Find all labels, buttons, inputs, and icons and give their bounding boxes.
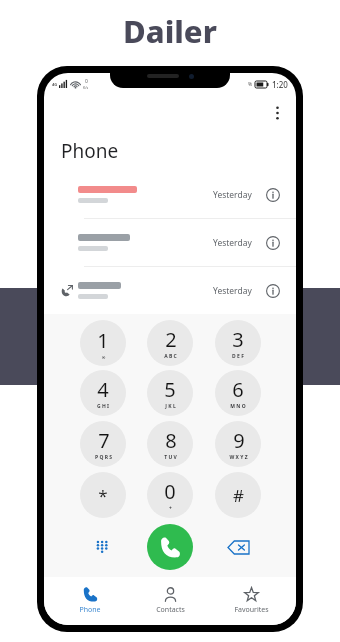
button[interactable]: 1 [80,320,126,366]
staticText: Yesterday [213,285,252,297]
button[interactable]: Keypad [83,527,123,567]
staticText: D E F [232,353,244,360]
button[interactable]: 2 [147,320,193,366]
staticText: A B C [164,353,177,360]
staticText: 4 [97,376,109,403]
staticText: J K L [165,403,176,410]
staticText: Yesterday [213,189,252,201]
button[interactable]: Call [147,524,193,570]
button[interactable]: 7 [80,421,126,467]
staticText: % [248,81,253,88]
button[interactable]: More options [264,100,290,126]
staticText: 1 [97,327,109,354]
staticText: G H I [97,403,109,410]
staticText: 6 [232,376,244,403]
staticText: Contacts [156,605,185,615]
staticText: K/s [83,85,89,90]
button[interactable]: Favourites [216,583,286,619]
staticText: M N O [230,403,246,410]
staticText: ∞ [101,354,106,360]
staticText: 4G [52,82,58,87]
button[interactable]: Backspace [218,527,258,567]
button[interactable]: Call details [262,184,284,206]
staticText: Favourites [234,605,269,615]
staticText: Yesterday [213,237,252,249]
staticText: Phone [79,605,101,615]
button[interactable]: # [215,472,261,518]
staticText: + [169,505,172,512]
button[interactable]: 0 [147,472,193,518]
button[interactable]: 4 [80,370,126,416]
button[interactable]: Yesterday [44,219,296,266]
staticText: 7 [98,427,110,454]
button[interactable]: Contacts [135,583,205,619]
staticText: Dailer [123,10,217,52]
button[interactable]: Phone [55,583,125,619]
button[interactable]: * [80,472,126,518]
staticText: # [233,484,244,507]
button[interactable]: Call details [262,280,284,302]
button[interactable]: 6 [215,370,261,416]
button[interactable]: Yesterday [44,267,296,314]
staticText: 8 [165,427,177,454]
staticText: P Q R S [95,454,112,461]
staticText: 0 [85,78,88,85]
button[interactable]: Yesterday [44,171,296,218]
staticText: 9 [233,427,245,454]
staticText: W X Y Z [229,454,248,461]
button[interactable]: 5 [147,370,193,416]
staticText: T U V [164,454,177,461]
button[interactable]: 3 [215,320,261,366]
button[interactable]: 9 [215,421,261,467]
button[interactable]: 8 [147,421,193,467]
button[interactable]: Call details [262,232,284,254]
staticText: 0 [164,478,176,505]
staticText: * [98,484,108,507]
staticText: Phone [61,138,119,164]
staticText: 3 [232,326,244,353]
staticText: 2 [165,326,177,353]
staticText: 5 [164,376,176,403]
staticText: 1:20 [272,79,288,90]
